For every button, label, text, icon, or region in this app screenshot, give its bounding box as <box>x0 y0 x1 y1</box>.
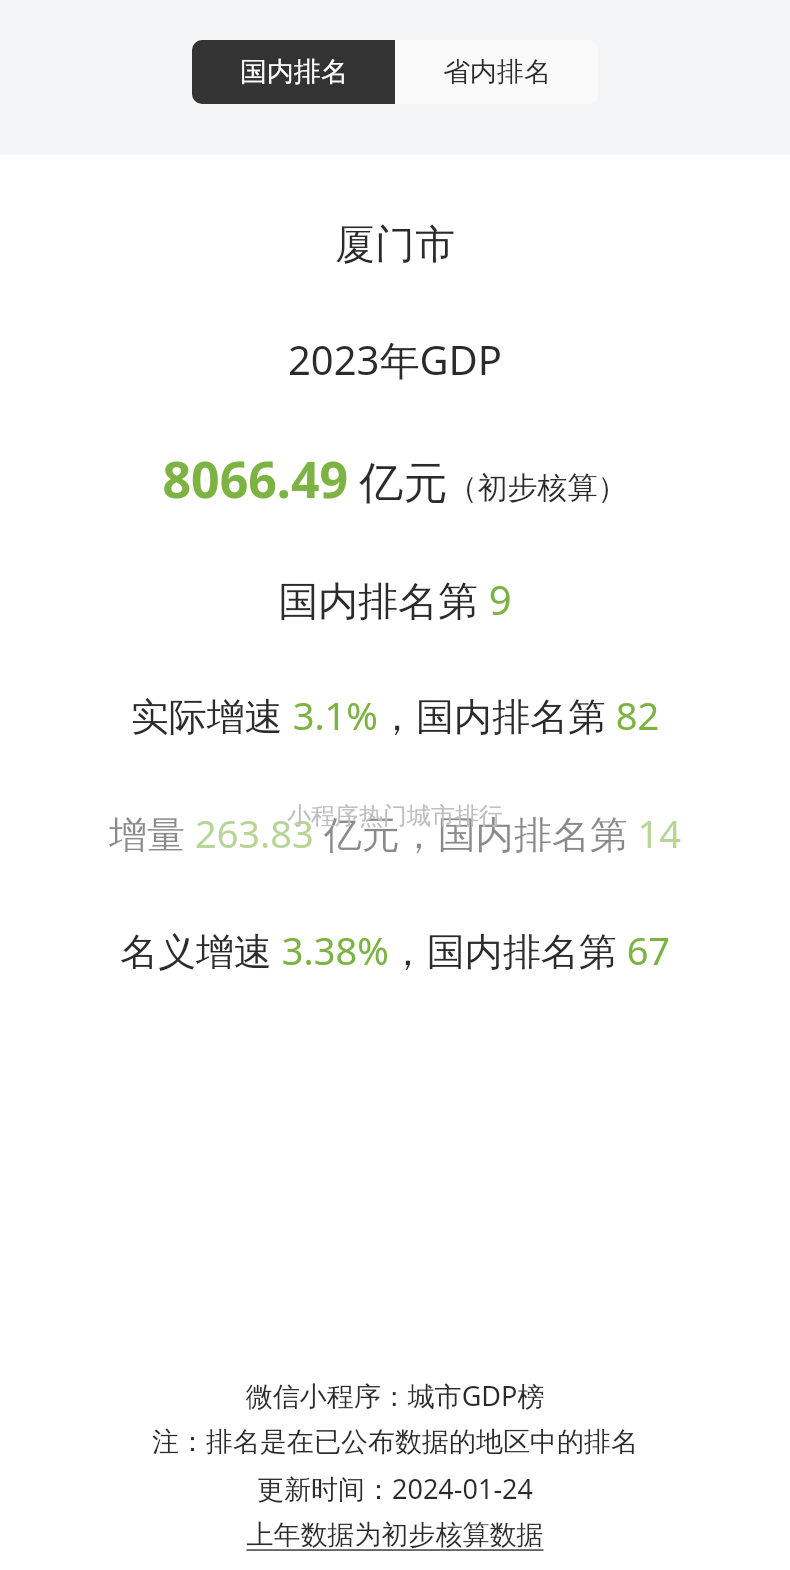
staticText: 2023年GDP <box>0 332 790 387</box>
button[interactable]: 省内排名 <box>395 40 598 104</box>
staticText: 更新时间：2024-01-24 <box>0 1470 790 1507</box>
staticText: 微信小程序：城市GDP榜 <box>0 1377 790 1414</box>
staticText: 注：排名是在已公布数据的地区中的排名 <box>0 1425 790 1459</box>
staticText: 国内排名 <box>240 55 348 89</box>
staticText: 省内排名 <box>443 55 551 89</box>
staticText: 8066.49 亿元（初步核算） <box>0 445 790 513</box>
button[interactable]: 国内排名 <box>192 40 395 104</box>
staticText: 增量 263.83 亿元，国内排名第 14 <box>0 807 790 859</box>
staticText: 上年数据为初步核算数据 <box>0 1518 790 1552</box>
staticText: 国内排名第 9 <box>0 572 790 627</box>
staticText: 实际增速 3.1%，国内排名第 82 <box>0 689 790 741</box>
staticText: 厦门市 <box>0 219 790 269</box>
staticText: 小程序热门城市排行 <box>0 801 790 831</box>
staticText: 名义增速 3.38%，国内排名第 67 <box>0 924 790 976</box>
